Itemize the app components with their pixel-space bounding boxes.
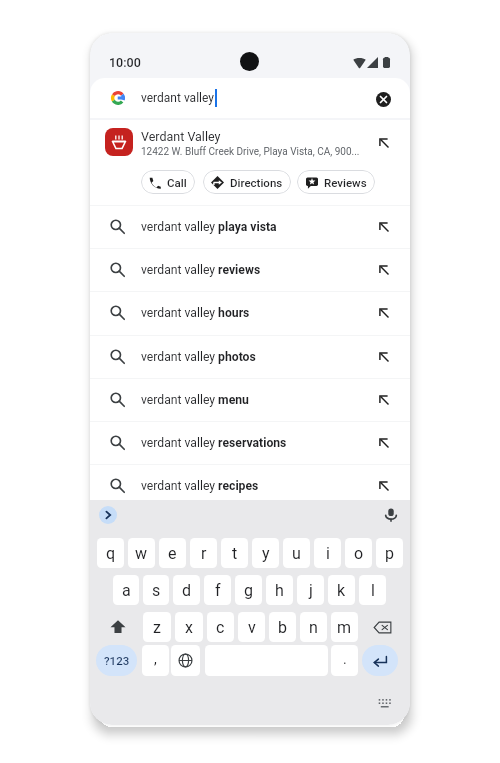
button[interactable]: , (142, 645, 169, 676)
staticText: q (106, 544, 116, 563)
button[interactable]: e (159, 538, 186, 568)
staticText: x (185, 618, 193, 637)
button[interactable]: o (345, 538, 372, 568)
staticText: verdant valley photos (141, 350, 256, 364)
staticText: 10:00 (109, 55, 141, 70)
staticText: k (337, 581, 346, 600)
button[interactable]: u (283, 538, 310, 568)
staticText: a (122, 581, 131, 600)
button[interactable]: w (128, 538, 155, 568)
staticText: o (354, 544, 364, 563)
button[interactable]: l (359, 575, 386, 605)
staticText: r (201, 544, 207, 563)
button[interactable]: Backspace (362, 612, 403, 642)
button[interactable]: b (269, 612, 296, 642)
button[interactable]: verdant valley reservations (90, 421, 410, 464)
button[interactable]: verdant valley (90, 78, 410, 118)
button[interactable]: Hide keyboard (378, 696, 392, 710)
staticText: verdant valley (141, 91, 214, 105)
button[interactable]: s (143, 575, 169, 605)
button[interactable]: Expand suggestions (99, 506, 117, 524)
staticText: f (215, 581, 221, 600)
button[interactable]: v (238, 612, 265, 642)
button[interactable]: h (266, 575, 293, 605)
button[interactable]: . (331, 645, 358, 676)
staticText: c (216, 618, 225, 637)
button[interactable]: verdant valley playa vista (90, 205, 410, 248)
button[interactable]: verdant valley recipes (90, 464, 410, 507)
button[interactable]: g (235, 575, 262, 605)
button[interactable]: Enter (362, 645, 398, 676)
staticText: e (168, 544, 177, 563)
button[interactable]: Shift (97, 612, 139, 642)
button[interactable]: i (314, 538, 341, 568)
staticText: verdant valley menu (141, 393, 249, 407)
button[interactable]: Change keyboard language (171, 645, 200, 676)
staticText: i (326, 544, 330, 563)
staticText: v (248, 618, 256, 637)
staticText: verdant valley reservations (141, 436, 287, 450)
button[interactable]: m (331, 612, 358, 642)
button[interactable]: a (113, 575, 139, 605)
staticText: t (232, 544, 238, 563)
staticText: verdant valley playa vista (141, 220, 277, 234)
staticText: verdant valley reviews (141, 263, 261, 277)
button[interactable]: ?123 (96, 645, 137, 676)
button[interactable]: f (204, 575, 231, 605)
staticText: Call (167, 176, 187, 189)
staticText: u (292, 544, 301, 563)
button[interactable]: x (175, 612, 203, 642)
button[interactable]: Clear search (376, 92, 391, 107)
button[interactable]: q (97, 538, 124, 568)
button[interactable]: z (143, 612, 171, 642)
button[interactable]: p (376, 538, 403, 568)
staticText: , (154, 651, 157, 667)
staticText: n (309, 618, 318, 637)
staticText: z (153, 618, 161, 637)
button[interactable]: r (190, 538, 217, 568)
staticText: Directions (230, 176, 283, 189)
button[interactable]: Reviews (297, 170, 375, 194)
staticText: g (244, 581, 253, 600)
staticText: . (343, 651, 347, 667)
staticText: Reviews (324, 176, 367, 189)
button[interactable]: t (221, 538, 248, 568)
staticText: y (262, 544, 270, 563)
button[interactable]: Use this suggestion (379, 138, 389, 148)
button[interactable]: Verdant Valley (90, 120, 410, 205)
staticText: Verdant Valley (141, 129, 221, 144)
staticText: m (337, 618, 352, 637)
staticText: p (385, 544, 394, 563)
button[interactable]: n (300, 612, 327, 642)
staticText: verdant valley recipes (141, 479, 259, 493)
staticText: b (278, 618, 287, 637)
button[interactable]: verdant valley hours (90, 291, 410, 334)
button[interactable]: verdant valley photos (90, 335, 410, 378)
staticText: l (371, 581, 375, 600)
button[interactable]: d (173, 575, 200, 605)
button[interactable]: verdant valley menu (90, 378, 410, 421)
staticText: ?123 (104, 654, 130, 667)
staticText: 12422 W. Bluff Creek Drive, Playa Vista,… (141, 146, 360, 158)
staticText: s (152, 581, 161, 600)
button[interactable]: verdant valley reviews (90, 248, 410, 291)
staticText: h (275, 581, 284, 600)
button[interactable]: Voice search (382, 506, 399, 523)
button[interactable]: c (207, 612, 234, 642)
button[interactable]: y (252, 538, 279, 568)
button[interactable]: Call (141, 170, 195, 194)
button[interactable]: j (297, 575, 324, 605)
staticText: verdant valley hours (141, 306, 250, 320)
staticText: w (135, 544, 148, 563)
button[interactable]: Directions (203, 170, 291, 194)
staticText: j (309, 581, 313, 600)
button[interactable]: k (328, 575, 355, 605)
staticText: d (182, 581, 192, 600)
